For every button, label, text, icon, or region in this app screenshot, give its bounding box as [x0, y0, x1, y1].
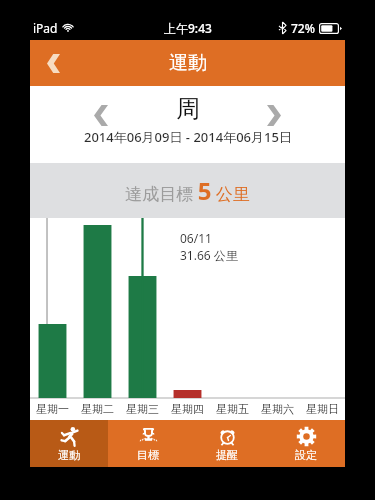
staticText: 星期三: [126, 402, 159, 416]
button[interactable]: 運動: [30, 420, 108, 467]
button[interactable]: 達成目標 5 公里: [30, 163, 345, 218]
staticText: 星期一: [36, 402, 69, 416]
staticText: 2014年06月09日 - 2014年06月15日: [84, 128, 292, 146]
staticText: 上午9:43: [164, 20, 212, 36]
button[interactable]: Back: [30, 40, 76, 86]
staticText: 31.66 公里: [180, 247, 238, 263]
button[interactable]: Next week: [257, 98, 291, 132]
button[interactable]: 提醒: [187, 420, 266, 467]
staticText: 目標: [137, 448, 159, 462]
staticText: 72%: [291, 20, 315, 36]
button[interactable]: Previous week: [84, 98, 118, 132]
staticText: iPad: [33, 20, 58, 36]
staticText: 星期日: [306, 402, 339, 416]
staticText: 星期五: [216, 402, 249, 416]
button[interactable]: 目標: [108, 420, 187, 467]
staticText: 運動: [58, 448, 80, 462]
staticText: 周: [176, 94, 200, 124]
staticText: 06/11: [180, 230, 212, 246]
staticText: 設定: [295, 448, 317, 462]
staticText: 達成目標 5 公里: [125, 174, 250, 207]
staticText: 運動: [169, 51, 207, 75]
staticText: 星期四: [171, 402, 204, 416]
staticText: 提醒: [216, 448, 238, 462]
staticText: 星期六: [261, 402, 294, 416]
staticText: 星期二: [81, 402, 114, 416]
button[interactable]: 設定: [266, 420, 345, 467]
